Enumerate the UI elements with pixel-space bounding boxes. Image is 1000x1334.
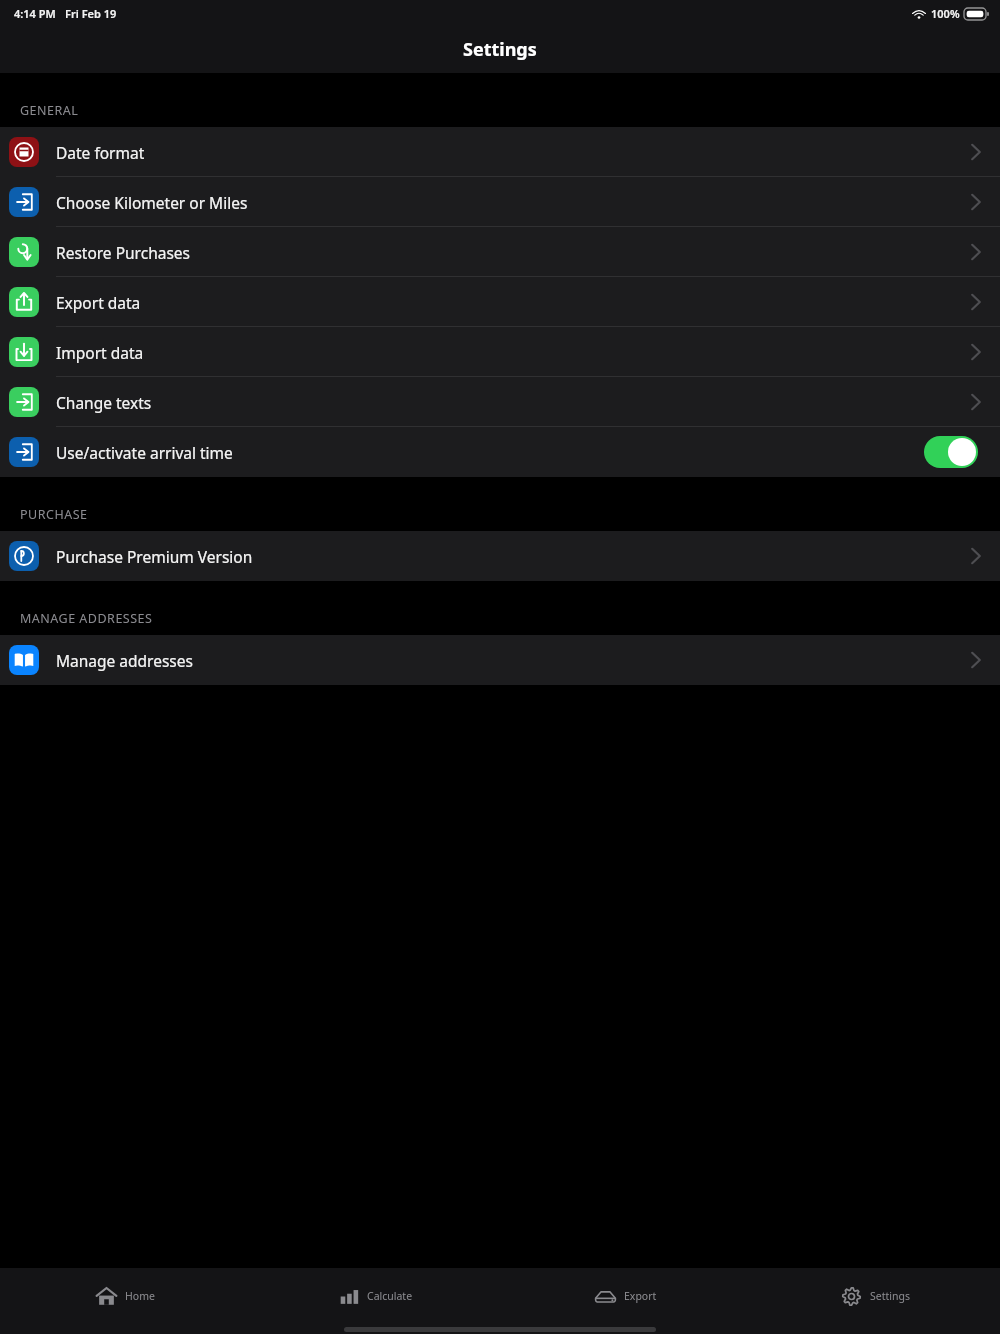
staticText: 4:14 PM — [14, 6, 56, 21]
button[interactable]: Home — [0, 1268, 250, 1324]
staticText: Export data — [56, 292, 141, 313]
button[interactable]: Arrival time toggle — [924, 436, 978, 468]
button[interactable]: Export data — [0, 277, 1000, 327]
button[interactable]: Manage addresses — [0, 635, 1000, 685]
staticText: Choose Kilometer or Miles — [56, 192, 248, 213]
staticText: Date format — [56, 142, 145, 163]
staticText: Home — [125, 1289, 155, 1303]
staticText: GENERAL — [20, 102, 79, 119]
staticText: Change texts — [56, 392, 152, 413]
staticText: Export — [624, 1289, 657, 1303]
staticText: Fri Feb 19 — [65, 6, 117, 21]
button[interactable]: Restore Purchases — [0, 227, 1000, 277]
button[interactable]: Use/activate arrival time — [0, 427, 1000, 477]
staticText: Use/activate arrival time — [56, 442, 233, 463]
button[interactable]: Choose Kilometer or Miles — [0, 177, 1000, 227]
staticText: Settings — [870, 1289, 910, 1303]
button[interactable]: Settings — [750, 1268, 1000, 1324]
staticText: Purchase Premium Version — [56, 546, 253, 567]
button[interactable]: Change texts — [0, 377, 1000, 427]
button[interactable]: Purchase Premium Version — [0, 531, 1000, 581]
staticText: Import data — [56, 342, 144, 363]
button[interactable]: Import data — [0, 327, 1000, 377]
button[interactable]: Calculate — [250, 1268, 500, 1324]
staticText: MANAGE ADDRESSES — [20, 610, 153, 627]
staticText: PURCHASE — [20, 506, 88, 523]
button[interactable]: Date format — [0, 127, 1000, 177]
staticText: Restore Purchases — [56, 242, 190, 263]
staticText: 100% — [931, 6, 960, 21]
staticText: Settings — [463, 37, 537, 62]
staticText: Manage addresses — [56, 650, 193, 671]
button[interactable]: Export — [500, 1268, 750, 1324]
staticText: Calculate — [367, 1289, 413, 1303]
